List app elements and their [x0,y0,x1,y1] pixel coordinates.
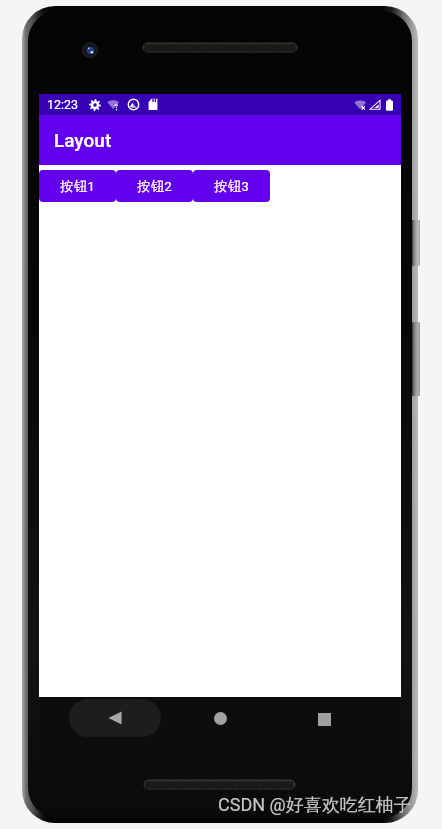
button[interactable]: Home [200,698,240,738]
button[interactable]: 按钮3 [193,170,270,202]
staticText: 按钮3 [214,178,249,195]
staticText: Layout [54,129,112,151]
button[interactable]: Recent apps [304,699,344,739]
button[interactable]: Back [69,699,161,737]
staticText: CSDN @好喜欢吃红柚子 [218,794,412,817]
button[interactable]: 按钮1 [39,170,116,202]
staticText: 12:23 [47,97,79,112]
staticText: 按钮1 [60,178,95,195]
staticText: 按钮2 [137,178,172,195]
button[interactable]: 按钮2 [116,170,193,202]
